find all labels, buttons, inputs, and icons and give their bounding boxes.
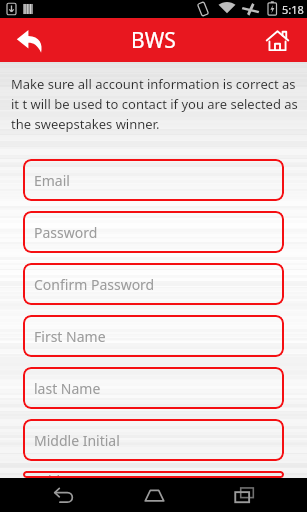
staticText: Password: [34, 223, 98, 242]
button[interactable]: Home: [257, 20, 297, 60]
button[interactable]: last Name: [23, 367, 284, 409]
staticText: Middle Initial: [34, 431, 120, 450]
button[interactable]: Middle Initial: [23, 419, 284, 461]
staticText: Confirm Password: [34, 275, 155, 294]
button[interactable]: First Name: [23, 315, 284, 357]
staticText: last Name: [34, 379, 101, 398]
staticText: BWS: [131, 26, 176, 55]
button[interactable]: Password: [23, 211, 284, 253]
button[interactable]: Back: [36, 478, 90, 512]
staticText: 5:18: [282, 2, 304, 17]
button[interactable]: Home: [127, 478, 181, 512]
staticText: Address: [34, 471, 87, 478]
button[interactable]: Email: [23, 159, 284, 201]
button[interactable]: Confirm Password: [23, 263, 284, 305]
staticText: Email: [34, 171, 70, 190]
button[interactable]: Address: [23, 471, 284, 478]
button[interactable]: Back: [8, 19, 50, 61]
staticText: Make sure all account information is cor…: [11, 75, 298, 133]
staticText: First Name: [34, 327, 106, 346]
button[interactable]: Recent apps: [217, 478, 271, 512]
